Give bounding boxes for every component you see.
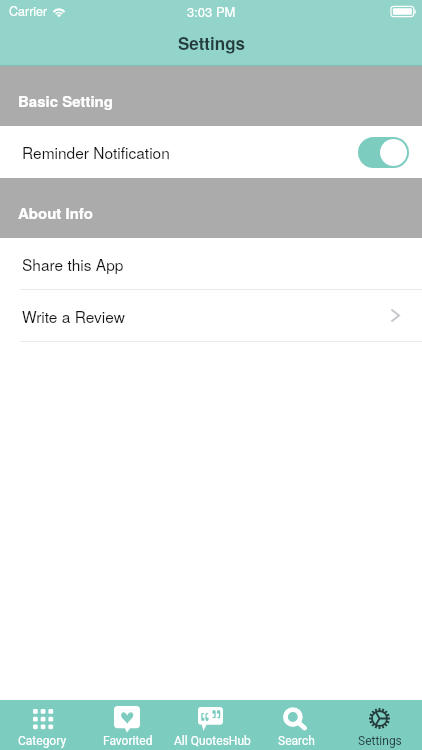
staticText: Basic Setting	[18, 90, 113, 111]
button[interactable]: All QuotesHub	[170, 700, 254, 750]
button[interactable]: Search	[254, 700, 338, 750]
staticText: 3:03 PM	[187, 2, 236, 21]
staticText: Favorited	[103, 734, 153, 748]
staticText: Category	[18, 734, 67, 748]
staticText: Write a Review	[22, 305, 125, 327]
staticText: Search	[278, 734, 315, 748]
staticText: All QuotesHub	[174, 734, 251, 748]
button[interactable]: Settings	[338, 700, 422, 750]
staticText: Reminder Notification	[22, 141, 170, 163]
staticText: Share this App	[22, 253, 124, 275]
button[interactable]: Favorited	[85, 700, 170, 750]
button[interactable]: Reminder Notification	[0, 126, 422, 178]
staticText: Settings	[178, 31, 245, 55]
staticText: About Info	[18, 202, 93, 223]
staticText: Settings	[358, 734, 402, 748]
staticText: Carrier	[9, 2, 48, 20]
button[interactable]: Category	[0, 700, 85, 750]
button[interactable]: Write a Review	[0, 290, 422, 341]
button[interactable]: Share this App	[0, 238, 422, 289]
button[interactable]: Reminder Notification switch, on	[358, 137, 409, 168]
